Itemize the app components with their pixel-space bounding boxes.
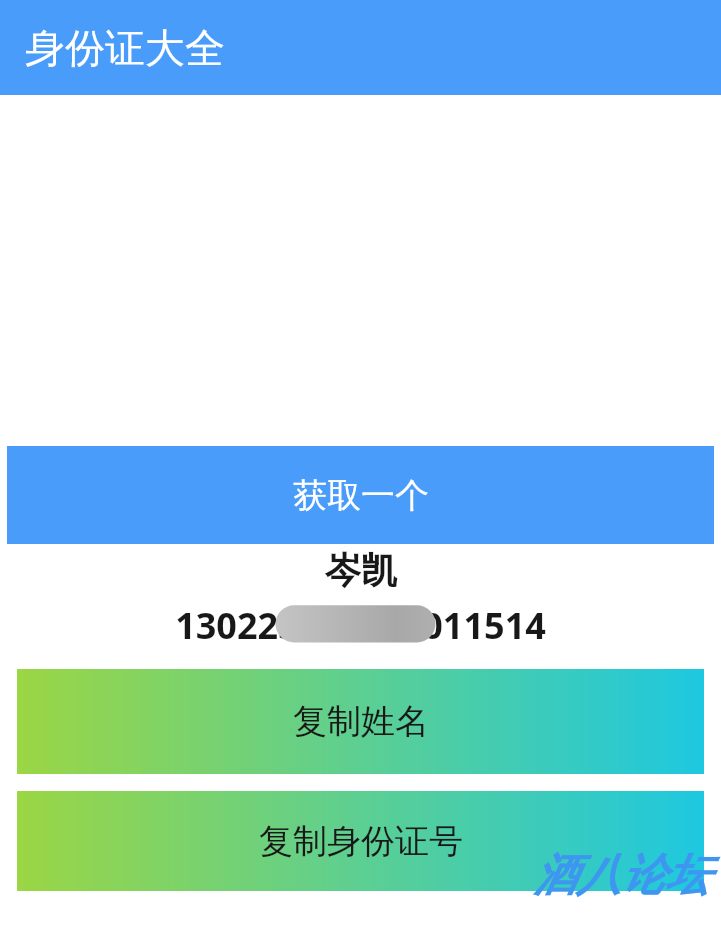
button[interactable]: 复制姓名 [17, 669, 704, 774]
button[interactable]: 获取一个 [7, 446, 714, 544]
staticText: 岑凯 [325, 548, 397, 593]
staticText: 酒八论坛 [533, 848, 709, 903]
staticText: 复制身份证号 [259, 820, 463, 863]
staticText: 获取一个 [293, 474, 429, 517]
staticText: 复制姓名 [293, 700, 429, 743]
staticText: 130223199001011514 [175, 601, 546, 650]
button[interactable]: 复制身份证号 [17, 791, 704, 891]
staticText: 身份证大全 [25, 23, 225, 73]
